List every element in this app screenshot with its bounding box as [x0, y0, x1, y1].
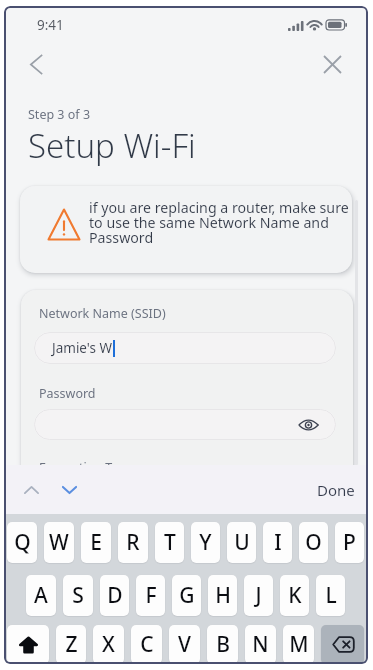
- staticText: Password: [39, 385, 96, 402]
- button[interactable]: S: [63, 575, 93, 616]
- staticText: N: [252, 630, 269, 659]
- button[interactable]: Done: [315, 476, 357, 504]
- button[interactable]: D: [100, 575, 129, 616]
- staticText: E: [90, 528, 102, 557]
- staticText: C: [140, 630, 154, 659]
- staticText: Y: [199, 528, 212, 557]
- staticText: K: [288, 581, 302, 610]
- staticText: V: [178, 630, 191, 659]
- button[interactable]: Backspace: [321, 625, 364, 664]
- staticText: Setup Wi-Fi: [28, 123, 196, 168]
- button[interactable]: Back: [20, 48, 52, 80]
- button[interactable]: M: [283, 625, 314, 664]
- staticText: Q: [14, 528, 31, 557]
- button[interactable]: Q: [7, 522, 37, 563]
- button[interactable]: C: [131, 625, 162, 664]
- staticText: T: [164, 528, 176, 557]
- button[interactable]: F: [136, 575, 165, 616]
- button[interactable]: Jamie's W: [34, 332, 336, 364]
- staticText: D: [107, 581, 123, 610]
- staticText: R: [126, 528, 140, 557]
- button[interactable]: Show password: [296, 413, 320, 437]
- button[interactable]: W: [44, 522, 74, 563]
- staticText: Jamie's W: [52, 339, 113, 357]
- button[interactable]: Y: [191, 522, 220, 563]
- staticText: if you are replacing a router, make sure…: [89, 198, 349, 247]
- button[interactable]: Shift: [7, 625, 49, 664]
- button[interactable]: G: [172, 575, 201, 616]
- staticText: 9:41: [37, 16, 64, 34]
- staticText: X: [102, 630, 115, 659]
- button[interactable]: Close: [316, 48, 348, 80]
- staticText: H: [215, 581, 231, 610]
- staticText: G: [179, 581, 195, 610]
- button[interactable]: V: [169, 625, 200, 664]
- staticText: S: [72, 581, 84, 610]
- staticText: W: [49, 528, 69, 557]
- staticText: Done: [317, 480, 355, 500]
- button[interactable]: X: [93, 625, 124, 664]
- staticText: Step 3 of 3: [28, 106, 91, 123]
- staticText: Z: [65, 630, 78, 659]
- button[interactable]: L: [316, 575, 345, 616]
- button[interactable]: Previous field: [16, 475, 46, 505]
- staticText: A: [34, 581, 48, 610]
- button[interactable]: O: [299, 522, 328, 563]
- staticText: L: [325, 581, 337, 610]
- staticText: U: [234, 528, 250, 557]
- button[interactable]: I: [263, 522, 292, 563]
- button[interactable]: N: [245, 625, 276, 664]
- button[interactable]: H: [208, 575, 237, 616]
- button[interactable]: U: [227, 522, 256, 563]
- button[interactable]: T: [155, 522, 184, 563]
- button[interactable]: Z: [56, 625, 86, 664]
- staticText: I: [274, 528, 282, 557]
- button[interactable]: R: [118, 522, 148, 563]
- staticText: F: [145, 581, 157, 610]
- button[interactable]: J: [244, 575, 273, 616]
- staticText: B: [216, 630, 230, 659]
- staticText: M: [289, 630, 309, 659]
- button[interactable]: K: [280, 575, 309, 616]
- button[interactable]: A: [26, 575, 56, 616]
- staticText: Network Name (SSID): [39, 305, 166, 322]
- staticText: P: [343, 528, 356, 557]
- button[interactable]: P: [335, 522, 364, 563]
- staticText: J: [255, 581, 262, 610]
- button[interactable]: B: [207, 625, 238, 664]
- staticText: Encryption Type: [39, 459, 133, 476]
- button[interactable]: Next field: [54, 475, 84, 505]
- button[interactable]: Show password: [34, 409, 336, 440]
- button[interactable]: E: [81, 522, 111, 563]
- staticText: O: [305, 528, 322, 557]
